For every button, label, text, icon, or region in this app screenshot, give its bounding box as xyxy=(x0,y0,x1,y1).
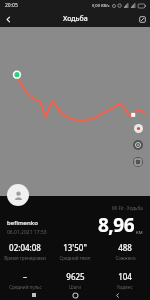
staticText: befimenko xyxy=(7,219,38,227)
staticText: км xyxy=(136,229,143,236)
staticText: Каденс xyxy=(117,284,133,290)
staticText: Средний пульс xyxy=(9,284,42,290)
staticText: 8,96 xyxy=(98,212,135,238)
button[interactable]: 13'50" xyxy=(50,242,100,261)
button[interactable]: Back xyxy=(0,11,16,27)
staticText: Время тренировки xyxy=(4,255,46,261)
staticText: Mi Fit · Ходьба xyxy=(112,205,143,211)
button[interactable]: Home xyxy=(67,290,83,300)
button[interactable]: 02:04:08 xyxy=(0,242,50,261)
button[interactable]: Back xyxy=(109,290,125,300)
button[interactable]: Share xyxy=(134,11,150,27)
staticText: 13'50" xyxy=(63,242,87,253)
button[interactable]: 488 xyxy=(100,242,150,261)
staticText: 104 xyxy=(118,271,132,282)
staticText: 0,00 KB/s xyxy=(92,3,110,8)
button[interactable]: 9625 xyxy=(50,271,100,290)
button[interactable]: Map layers xyxy=(133,140,143,150)
button[interactable]: Profile xyxy=(7,184,29,206)
staticText: 02:04:08 xyxy=(9,242,41,253)
staticText: 9625 xyxy=(66,271,85,282)
staticText: 488 xyxy=(118,242,132,253)
staticText: 06.01.2021 17:53 xyxy=(7,229,47,236)
staticText: Ходьба xyxy=(63,14,88,24)
button[interactable]: 104 xyxy=(100,271,150,290)
button[interactable]: Fullscreen map xyxy=(133,157,143,167)
button[interactable]: Location pin xyxy=(134,124,143,133)
button[interactable]: Recents xyxy=(26,290,42,300)
staticText: Шаги xyxy=(69,284,81,290)
staticText: 20:05 xyxy=(5,2,18,9)
button[interactable]: – xyxy=(0,271,50,290)
staticText: – xyxy=(23,271,27,282)
staticText: Средний темп xyxy=(59,255,91,261)
staticText: Сожжено xyxy=(115,255,136,261)
